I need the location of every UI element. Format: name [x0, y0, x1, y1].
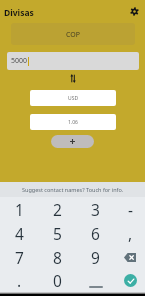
button[interactable]: 6: [76, 221, 115, 245]
button[interactable]: Divisas: [4, 7, 34, 19]
button[interactable]: Suggest contact names? Touch for info.: [0, 182, 145, 197]
button[interactable]: Done: [115, 269, 145, 292]
button[interactable]: Add currency: [51, 135, 94, 148]
staticText: Suggest contact names? Touch for info.: [22, 186, 124, 193]
staticText: 9: [91, 247, 100, 268]
staticText: .: [17, 270, 22, 291]
staticText: 0: [53, 270, 62, 291]
staticText: ,: [128, 223, 133, 244]
staticText: COP: [66, 30, 80, 40]
staticText: 4: [15, 223, 24, 244]
button[interactable]: 0: [38, 269, 76, 292]
button[interactable]: 1: [0, 197, 38, 221]
staticText: 1.06: [68, 119, 78, 126]
button[interactable]: 8: [38, 245, 76, 269]
staticText: 2: [53, 199, 62, 220]
button[interactable]: 4: [0, 221, 38, 245]
button[interactable]: Settings: [127, 4, 141, 18]
button[interactable]: 5: [38, 221, 76, 245]
staticText: -: [128, 199, 133, 220]
button[interactable]: COP: [11, 23, 135, 45]
staticText: 5000: [11, 56, 28, 66]
staticText: 5: [53, 223, 62, 244]
button[interactable]: 7: [0, 245, 38, 269]
staticText: 3: [91, 199, 100, 220]
button[interactable]: .: [0, 269, 38, 292]
button[interactable]: Swap currencies: [68, 74, 77, 83]
button[interactable]: 9: [76, 245, 115, 269]
button[interactable]: ,: [115, 221, 145, 245]
staticText: 1: [15, 199, 24, 220]
staticText: 8: [53, 247, 62, 268]
button[interactable]: 5000: [7, 52, 139, 70]
staticText: Divisas: [4, 7, 34, 19]
button[interactable]: 3: [76, 197, 115, 221]
staticText: USD: [68, 95, 79, 102]
button[interactable]: Backspace: [115, 245, 145, 269]
staticText: 7: [15, 247, 24, 268]
staticText: 6: [91, 223, 100, 244]
button[interactable]: 1.06: [30, 114, 116, 130]
button[interactable]: USD: [30, 90, 116, 106]
button[interactable]: 2: [38, 197, 76, 221]
button[interactable]: -: [115, 197, 145, 221]
button[interactable]: Space: [76, 269, 115, 292]
